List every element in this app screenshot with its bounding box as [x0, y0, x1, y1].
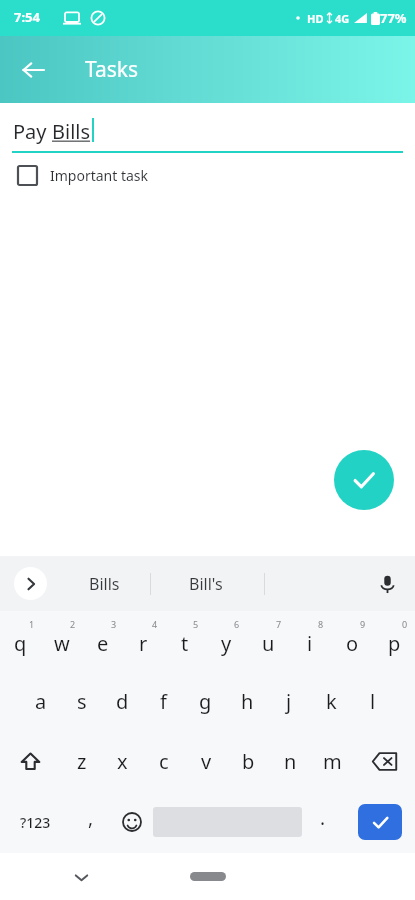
button[interactable]: ?123: [0, 791, 70, 853]
button[interactable]: b: [227, 731, 269, 791]
staticText: 4G: [335, 11, 350, 26]
staticText: w: [54, 630, 70, 657]
staticText: 1: [29, 618, 35, 630]
button[interactable]: m: [311, 731, 353, 791]
button[interactable]: ,: [70, 791, 111, 853]
button[interactable]: e: [82, 611, 123, 671]
button[interactable]: q: [0, 611, 41, 671]
button[interactable]: i: [289, 611, 331, 671]
button[interactable]: n: [269, 731, 311, 791]
staticText: p: [388, 630, 401, 657]
staticText: 2: [70, 618, 76, 630]
button[interactable]: a: [20, 671, 61, 731]
staticText: y: [221, 630, 232, 657]
staticText: t: [181, 630, 189, 657]
button[interactable]: Enter: [358, 804, 402, 840]
staticText: z: [77, 748, 87, 775]
button[interactable]: Voice input: [367, 564, 407, 604]
staticText: 3: [111, 618, 117, 630]
staticText: Pay: [13, 118, 52, 145]
staticText: 8: [318, 618, 324, 630]
button[interactable]: Important task: [0, 153, 415, 197]
staticText: a: [35, 688, 47, 715]
staticText: m: [323, 748, 342, 775]
button[interactable]: p: [373, 611, 415, 671]
button[interactable]: x: [102, 731, 143, 791]
staticText: ?123: [20, 813, 51, 832]
staticText: Bills: [89, 573, 120, 595]
staticText: e: [97, 630, 109, 657]
staticText: 7:54: [14, 8, 40, 26]
button[interactable]: k: [310, 671, 352, 731]
button[interactable]: Bills: [62, 556, 147, 611]
button[interactable]: f: [143, 671, 184, 731]
button[interactable]: Back: [10, 47, 56, 93]
button[interactable]: c: [143, 731, 185, 791]
staticText: 6: [234, 618, 240, 630]
button[interactable]: w: [41, 611, 82, 671]
staticText: Important task: [50, 166, 149, 185]
button[interactable]: More suggestions: [14, 567, 47, 600]
staticText: q: [14, 630, 27, 657]
staticText: k: [326, 688, 337, 715]
button[interactable]: Home: [190, 872, 226, 881]
staticText: c: [159, 748, 169, 775]
staticText: o: [346, 630, 359, 657]
staticText: Tasks: [85, 55, 139, 84]
staticText: Bill's: [189, 573, 223, 595]
staticText: 77%: [380, 9, 407, 27]
staticText: d: [116, 688, 129, 715]
button[interactable]: j: [268, 671, 310, 731]
button[interactable]: Pay: [0, 103, 415, 153]
button[interactable]: o: [331, 611, 373, 671]
button[interactable]: Backspace: [353, 731, 415, 791]
staticText: HD: [307, 11, 324, 26]
button[interactable]: Shift: [0, 731, 61, 791]
staticText: 7: [276, 618, 282, 630]
staticText: j: [286, 688, 292, 715]
button[interactable]: z: [61, 731, 102, 791]
button[interactable]: Bill's: [163, 556, 248, 611]
staticText: b: [242, 748, 255, 775]
button[interactable]: .: [302, 791, 344, 853]
staticText: r: [139, 630, 148, 657]
staticText: v: [201, 748, 212, 775]
staticText: l: [370, 688, 376, 715]
staticText: u: [262, 630, 275, 657]
staticText: g: [199, 688, 212, 715]
button[interactable]: v: [185, 731, 227, 791]
button[interactable]: Hide keyboard: [62, 858, 100, 896]
staticText: f: [160, 688, 167, 715]
button[interactable]: r: [123, 611, 164, 671]
staticText: 5: [193, 618, 199, 630]
button[interactable]: u: [247, 611, 289, 671]
staticText: 9: [360, 618, 366, 630]
staticText: h: [241, 688, 254, 715]
staticText: Bills: [52, 118, 91, 145]
staticText: s: [77, 688, 87, 715]
staticText: n: [284, 748, 297, 775]
button[interactable]: l: [352, 671, 394, 731]
button[interactable]: s: [61, 671, 102, 731]
button[interactable]: h: [226, 671, 268, 731]
staticText: 0: [402, 618, 408, 630]
button[interactable]: y: [205, 611, 247, 671]
staticText: x: [117, 748, 128, 775]
button[interactable]: d: [102, 671, 143, 731]
staticText: 4: [152, 618, 158, 630]
button[interactable]: Save task: [334, 450, 394, 510]
staticText: ,: [88, 805, 94, 831]
button[interactable]: t: [164, 611, 205, 671]
button[interactable]: Emoji: [111, 791, 153, 853]
staticText: i: [307, 630, 313, 657]
button[interactable]: g: [184, 671, 226, 731]
staticText: .: [320, 805, 326, 831]
